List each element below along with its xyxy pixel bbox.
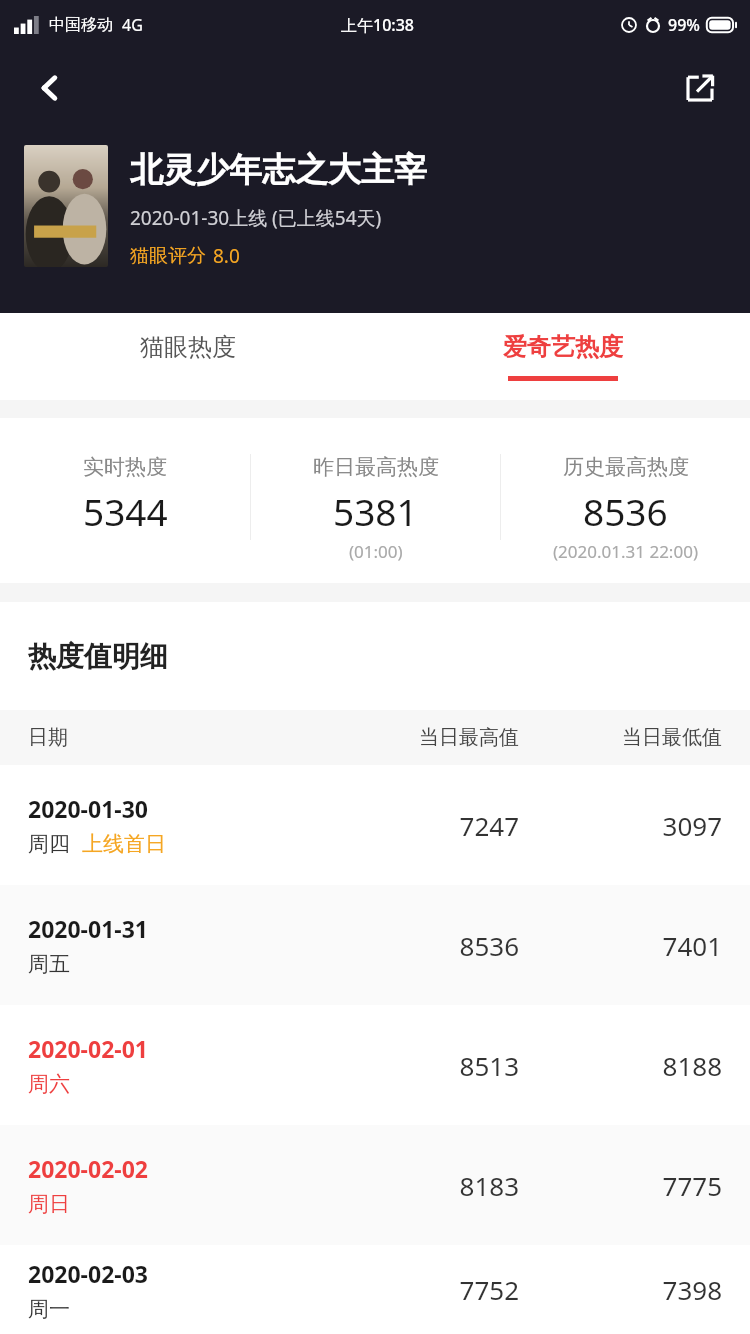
button[interactable]: 爱奇艺热度 [375, 313, 750, 400]
button[interactable]: 2020-01-31 [0, 885, 750, 1005]
staticText: 7247 [288, 808, 519, 843]
staticText: 北灵少年志之大主宰 [130, 149, 427, 191]
staticText: 爱奇艺热度 [503, 332, 623, 362]
staticText: 3097 [519, 808, 722, 843]
staticText: 2020-02-01 [28, 1033, 148, 1064]
staticText: 猫眼热度 [140, 332, 236, 362]
staticText: 中国移动 [49, 15, 113, 35]
staticText: 8183 [288, 1168, 519, 1203]
staticText: 8513 [288, 1048, 519, 1083]
staticText: 周日 [28, 1191, 70, 1217]
staticText: 周五 [28, 951, 70, 977]
staticText: 实时热度 [83, 454, 167, 480]
staticText: 99% [668, 14, 700, 36]
staticText: 7401 [519, 928, 722, 963]
button[interactable]: 2020-02-01 [0, 1005, 750, 1125]
staticText: 历史最高热度 [563, 454, 689, 480]
staticText: (01:00) [349, 540, 403, 563]
staticText: 8536 [288, 928, 519, 963]
staticText: 周四 [28, 831, 70, 857]
button[interactable]: 猫眼热度 [0, 313, 375, 400]
staticText: 7398 [519, 1272, 722, 1307]
staticText: 2020-01-31 [28, 913, 148, 944]
button[interactable]: Share [670, 58, 730, 118]
staticText: 日期 [28, 725, 288, 750]
button[interactable]: 2020-01-30 [0, 765, 750, 885]
staticText: 5344 [83, 486, 168, 536]
staticText: (2020.01.31 22:00) [553, 540, 698, 563]
staticText: 7752 [288, 1272, 519, 1307]
staticText: 4G [122, 14, 143, 36]
staticText: 5381 [333, 486, 418, 536]
staticText: 2020-02-02 [28, 1153, 148, 1184]
staticText: 8536 [583, 486, 668, 536]
staticText: 当日最高值 [288, 725, 519, 750]
button[interactable]: 2020-02-03 [0, 1245, 750, 1334]
staticText: 7775 [519, 1168, 722, 1203]
staticText: 8.0 [213, 243, 240, 269]
staticText: 当日最低值 [519, 725, 722, 750]
staticText: 热度值明细 [28, 639, 168, 674]
staticText: 昨日最高热度 [313, 454, 439, 480]
staticText: 周六 [28, 1071, 70, 1097]
staticText: 8188 [519, 1048, 722, 1083]
staticText: 上午10:38 [341, 14, 414, 36]
button[interactable]: Back [20, 58, 80, 118]
staticText: 周一 [28, 1296, 70, 1322]
staticText: 2020-01-30 [28, 793, 148, 824]
staticText: 猫眼评分 [130, 244, 206, 268]
staticText: 上线首日 [82, 831, 166, 857]
button[interactable]: 2020-02-02 [0, 1125, 750, 1245]
staticText: 2020-01-30上线 (已上线54天) [130, 205, 382, 231]
staticText: 2020-02-03 [28, 1258, 148, 1289]
